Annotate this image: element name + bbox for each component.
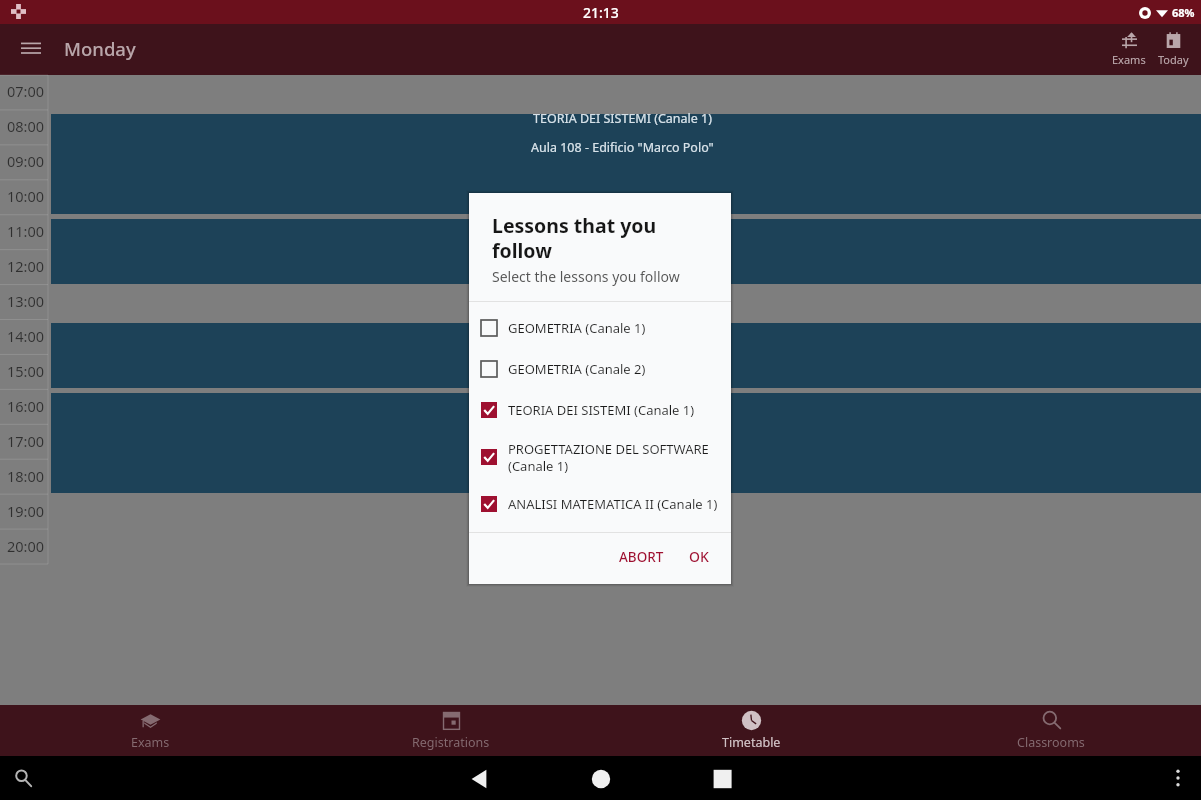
staticText: GEOMETRIA (Canale 1) — [508, 319, 646, 337]
staticText: 10:00 — [7, 186, 45, 206]
staticText: Classrooms — [1017, 734, 1085, 751]
button[interactable]: OK — [678, 539, 720, 574]
staticText: 07:00 — [7, 81, 45, 101]
button[interactable]: TEORIA DEI SISTEMI (Canale 1) — [469, 389, 731, 430]
button[interactable]: Today — [1151, 24, 1195, 75]
staticText: Registrations — [412, 734, 490, 751]
staticText: Lessons that you follow — [492, 212, 683, 264]
staticText: Exams — [131, 734, 170, 751]
button[interactable]: PROGETTAZIONE DEL SOFTWARE (Canale 1) — [469, 430, 731, 484]
staticText: 19:00 — [7, 501, 45, 521]
button[interactable]: Recents — [713, 769, 733, 789]
button[interactable]: Registrations — [301, 705, 601, 756]
staticText: 11:00 — [7, 221, 45, 241]
staticText: OK — [689, 547, 709, 566]
button[interactable]: GEOMETRIA (Canale 2) — [469, 348, 731, 389]
button[interactable]: Search — [15, 770, 32, 787]
staticText: TEORIA DEI SISTEMI (Canale 1) — [533, 110, 712, 127]
button[interactable]: Timetable — [601, 705, 901, 756]
staticText: Today — [1158, 52, 1189, 67]
staticText: Aula 108 - Edificio "Marco Polo" — [531, 139, 714, 156]
staticText: 18:00 — [7, 466, 45, 486]
staticText: 08:00 — [7, 116, 45, 136]
button[interactable]: Back — [469, 769, 489, 789]
staticText: 68% — [1172, 5, 1195, 20]
button[interactable]: Home — [591, 769, 611, 789]
button[interactable] — [51, 114, 1201, 214]
button[interactable]: Exams — [1107, 24, 1151, 75]
button[interactable]: Exams — [0, 705, 301, 756]
staticText: Monday — [64, 36, 136, 61]
staticText: 15:00 — [7, 361, 45, 381]
staticText: 20:00 — [7, 536, 45, 556]
button[interactable]: GEOMETRIA (Canale 1) — [469, 307, 731, 348]
button[interactable] — [51, 323, 1201, 388]
staticText: 21:13 — [583, 3, 619, 22]
button[interactable]: Classrooms — [901, 705, 1201, 756]
button[interactable]: Open navigation drawer — [12, 31, 50, 69]
button[interactable] — [51, 219, 1201, 284]
staticText: PROGETTAZIONE DEL SOFTWARE (Canale 1) — [508, 440, 719, 475]
staticText: 09:00 — [7, 151, 45, 171]
staticText: Select the lessons you follow — [492, 267, 680, 286]
staticText: 13:00 — [7, 291, 45, 311]
staticText: 12:00 — [7, 256, 45, 276]
staticText: Timetable — [722, 734, 781, 751]
staticText: ABORT — [619, 548, 664, 566]
button[interactable] — [51, 393, 1201, 493]
staticText: Exams — [1112, 52, 1146, 67]
staticText: 16:00 — [7, 396, 45, 416]
staticText: 14:00 — [7, 326, 45, 346]
button[interactable]: ANALISI MATEMATICA II (Canale 1) — [469, 484, 731, 523]
staticText: ANALISI MATEMATICA II (Canale 1) — [508, 495, 718, 513]
staticText: 17:00 — [7, 431, 45, 451]
staticText: TEORIA DEI SISTEMI (Canale 1) — [508, 401, 695, 419]
button[interactable]: ABORT — [608, 540, 675, 574]
staticText: GEOMETRIA (Canale 2) — [508, 360, 646, 378]
button[interactable]: More options — [1168, 768, 1188, 788]
